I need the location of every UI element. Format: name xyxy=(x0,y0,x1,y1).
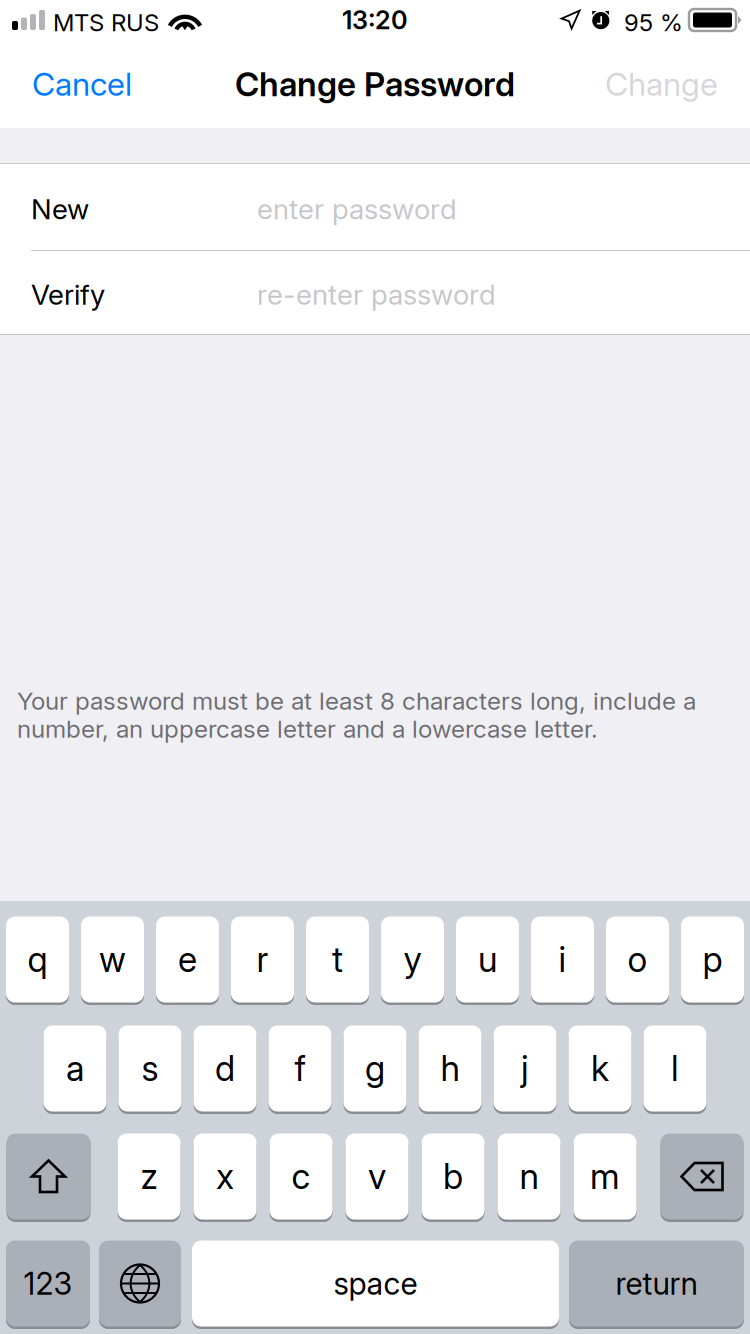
button[interactable]: v xyxy=(345,1131,408,1222)
staticText: Change xyxy=(605,65,718,103)
staticText: r xyxy=(256,938,268,980)
staticText: 13:20 xyxy=(342,5,408,35)
button[interactable]: z xyxy=(117,1131,180,1222)
staticText: MTS RUS xyxy=(53,8,159,37)
button[interactable]: a xyxy=(43,1023,106,1114)
button[interactable]: f xyxy=(268,1023,331,1114)
button[interactable]: k xyxy=(568,1023,631,1114)
button[interactable]: m xyxy=(573,1131,636,1222)
button[interactable]: y xyxy=(381,914,444,1005)
staticText: b xyxy=(443,1155,463,1197)
staticText: s xyxy=(141,1047,158,1089)
button[interactable]: space xyxy=(192,1238,559,1329)
staticText: Verify xyxy=(31,278,105,311)
button[interactable]: g xyxy=(343,1023,406,1114)
button[interactable]: j xyxy=(493,1023,556,1114)
button[interactable]: x xyxy=(193,1131,256,1222)
button[interactable]: Change xyxy=(548,40,750,128)
staticText: enter password xyxy=(257,192,457,226)
staticText: i xyxy=(558,938,566,980)
staticText: f xyxy=(294,1047,305,1089)
staticText: v xyxy=(368,1155,386,1197)
staticText: x xyxy=(216,1155,234,1197)
button[interactable]: Verify xyxy=(0,251,750,334)
button[interactable]: Delete xyxy=(660,1131,743,1222)
button[interactable]: w xyxy=(81,914,144,1005)
staticText: Your password must be at least 8 charact… xyxy=(17,686,696,715)
button[interactable]: Cancel xyxy=(0,40,202,128)
staticText: j xyxy=(521,1047,529,1089)
staticText: k xyxy=(591,1047,609,1089)
button[interactable]: l xyxy=(643,1023,706,1114)
staticText: n xyxy=(519,1155,538,1197)
button[interactable]: h xyxy=(418,1023,481,1114)
button[interactable]: Next keyboard xyxy=(99,1238,181,1329)
button[interactable]: e xyxy=(156,914,219,1005)
button[interactable]: b xyxy=(421,1131,484,1222)
staticText: z xyxy=(140,1155,157,1197)
staticText: e xyxy=(178,938,197,980)
button[interactable]: q xyxy=(6,914,69,1005)
button[interactable]: t xyxy=(306,914,369,1005)
staticText: number, an uppercase letter and a lowerc… xyxy=(17,714,598,743)
staticText: o xyxy=(627,938,647,980)
button[interactable]: Shift xyxy=(6,1131,90,1222)
staticText: d xyxy=(215,1047,235,1089)
button[interactable]: p xyxy=(681,914,744,1005)
button[interactable]: u xyxy=(456,914,519,1005)
staticText: m xyxy=(590,1155,620,1197)
staticText: h xyxy=(440,1047,459,1089)
staticText: Change Password xyxy=(235,64,515,104)
staticText: return xyxy=(615,1265,697,1302)
staticText: space xyxy=(333,1265,417,1302)
staticText: re-enter password xyxy=(257,278,496,311)
button[interactable]: r xyxy=(231,914,294,1005)
staticText: w xyxy=(99,938,126,980)
staticText: 123 xyxy=(23,1265,72,1302)
staticText: p xyxy=(702,938,722,980)
staticText: Cancel xyxy=(32,65,132,103)
staticText: New xyxy=(31,192,89,226)
button[interactable]: New xyxy=(0,164,750,250)
button[interactable]: return xyxy=(569,1238,744,1329)
staticText: 95 % xyxy=(624,8,683,37)
staticText: t xyxy=(332,938,343,980)
button[interactable]: n xyxy=(497,1131,560,1222)
button[interactable]: i xyxy=(531,914,594,1005)
staticText: l xyxy=(671,1047,679,1089)
button[interactable]: 123 xyxy=(6,1238,90,1329)
button[interactable]: o xyxy=(606,914,669,1005)
staticText: g xyxy=(365,1047,385,1089)
staticText: q xyxy=(27,938,47,980)
staticText: c xyxy=(291,1155,310,1197)
staticText: u xyxy=(478,938,497,980)
staticText: y xyxy=(403,938,421,980)
button[interactable]: s xyxy=(118,1023,181,1114)
staticText: a xyxy=(66,1047,84,1089)
button[interactable]: d xyxy=(193,1023,256,1114)
button[interactable]: c xyxy=(269,1131,332,1222)
